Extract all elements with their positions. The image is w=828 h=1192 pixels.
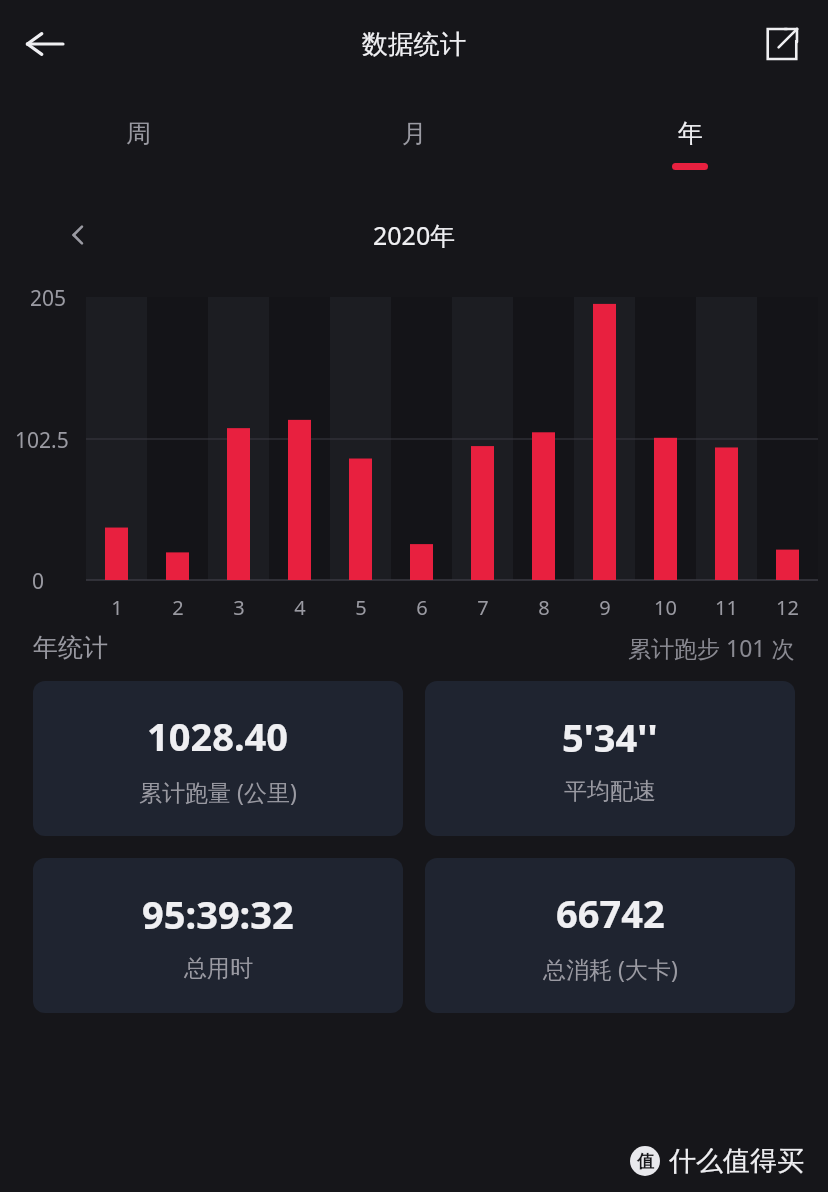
staticText: 102.5 <box>15 426 69 455</box>
staticText: 什么值得买 <box>669 1144 804 1178</box>
staticText: 0 <box>32 567 45 596</box>
staticText: 周 <box>126 118 151 149</box>
staticText: 12 <box>776 594 799 621</box>
staticText: 7 <box>477 594 489 621</box>
button[interactable]: 1028.40 <box>33 681 403 836</box>
staticText: 66742 <box>556 887 665 939</box>
button[interactable]: 95:39:32 <box>33 858 403 1013</box>
staticText: 累计跑步 101 次 <box>628 632 795 663</box>
button[interactable]: 月 <box>276 88 552 198</box>
staticText: 累计跑量 (公里) <box>139 776 297 807</box>
staticText: 数据统计 <box>362 28 466 61</box>
staticText: 值 <box>637 1151 654 1172</box>
button[interactable]: 周 <box>0 88 276 198</box>
staticText: 年 <box>678 118 703 149</box>
button[interactable]: Share <box>752 14 812 74</box>
button[interactable]: 年 <box>552 88 828 198</box>
staticText: 5 <box>355 594 367 621</box>
button[interactable]: Previous year <box>50 207 106 263</box>
staticText: 总消耗 (大卡) <box>543 953 678 984</box>
staticText: 年统计 <box>33 632 108 663</box>
staticText: 2 <box>172 594 184 621</box>
staticText: 95:39:32 <box>142 888 294 940</box>
staticText: 6 <box>416 594 428 621</box>
staticText: 8 <box>538 594 550 621</box>
staticText: 1028.40 <box>147 710 289 762</box>
staticText: 平均配速 <box>564 777 656 806</box>
staticText: 4 <box>294 594 306 621</box>
button[interactable]: Back <box>14 13 76 75</box>
button[interactable]: 66742 <box>425 858 795 1013</box>
staticText: 2020年 <box>373 218 456 252</box>
staticText: 11 <box>715 594 738 621</box>
staticText: 10 <box>654 594 677 621</box>
staticText: 3 <box>233 594 245 621</box>
staticText: 9 <box>599 594 611 621</box>
staticText: 205 <box>30 284 67 313</box>
staticText: 1 <box>111 594 123 621</box>
button[interactable]: 5'34'' <box>425 681 795 836</box>
staticText: 月 <box>402 118 427 149</box>
staticText: 5'34'' <box>562 711 658 763</box>
staticText: 总用时 <box>184 954 253 983</box>
